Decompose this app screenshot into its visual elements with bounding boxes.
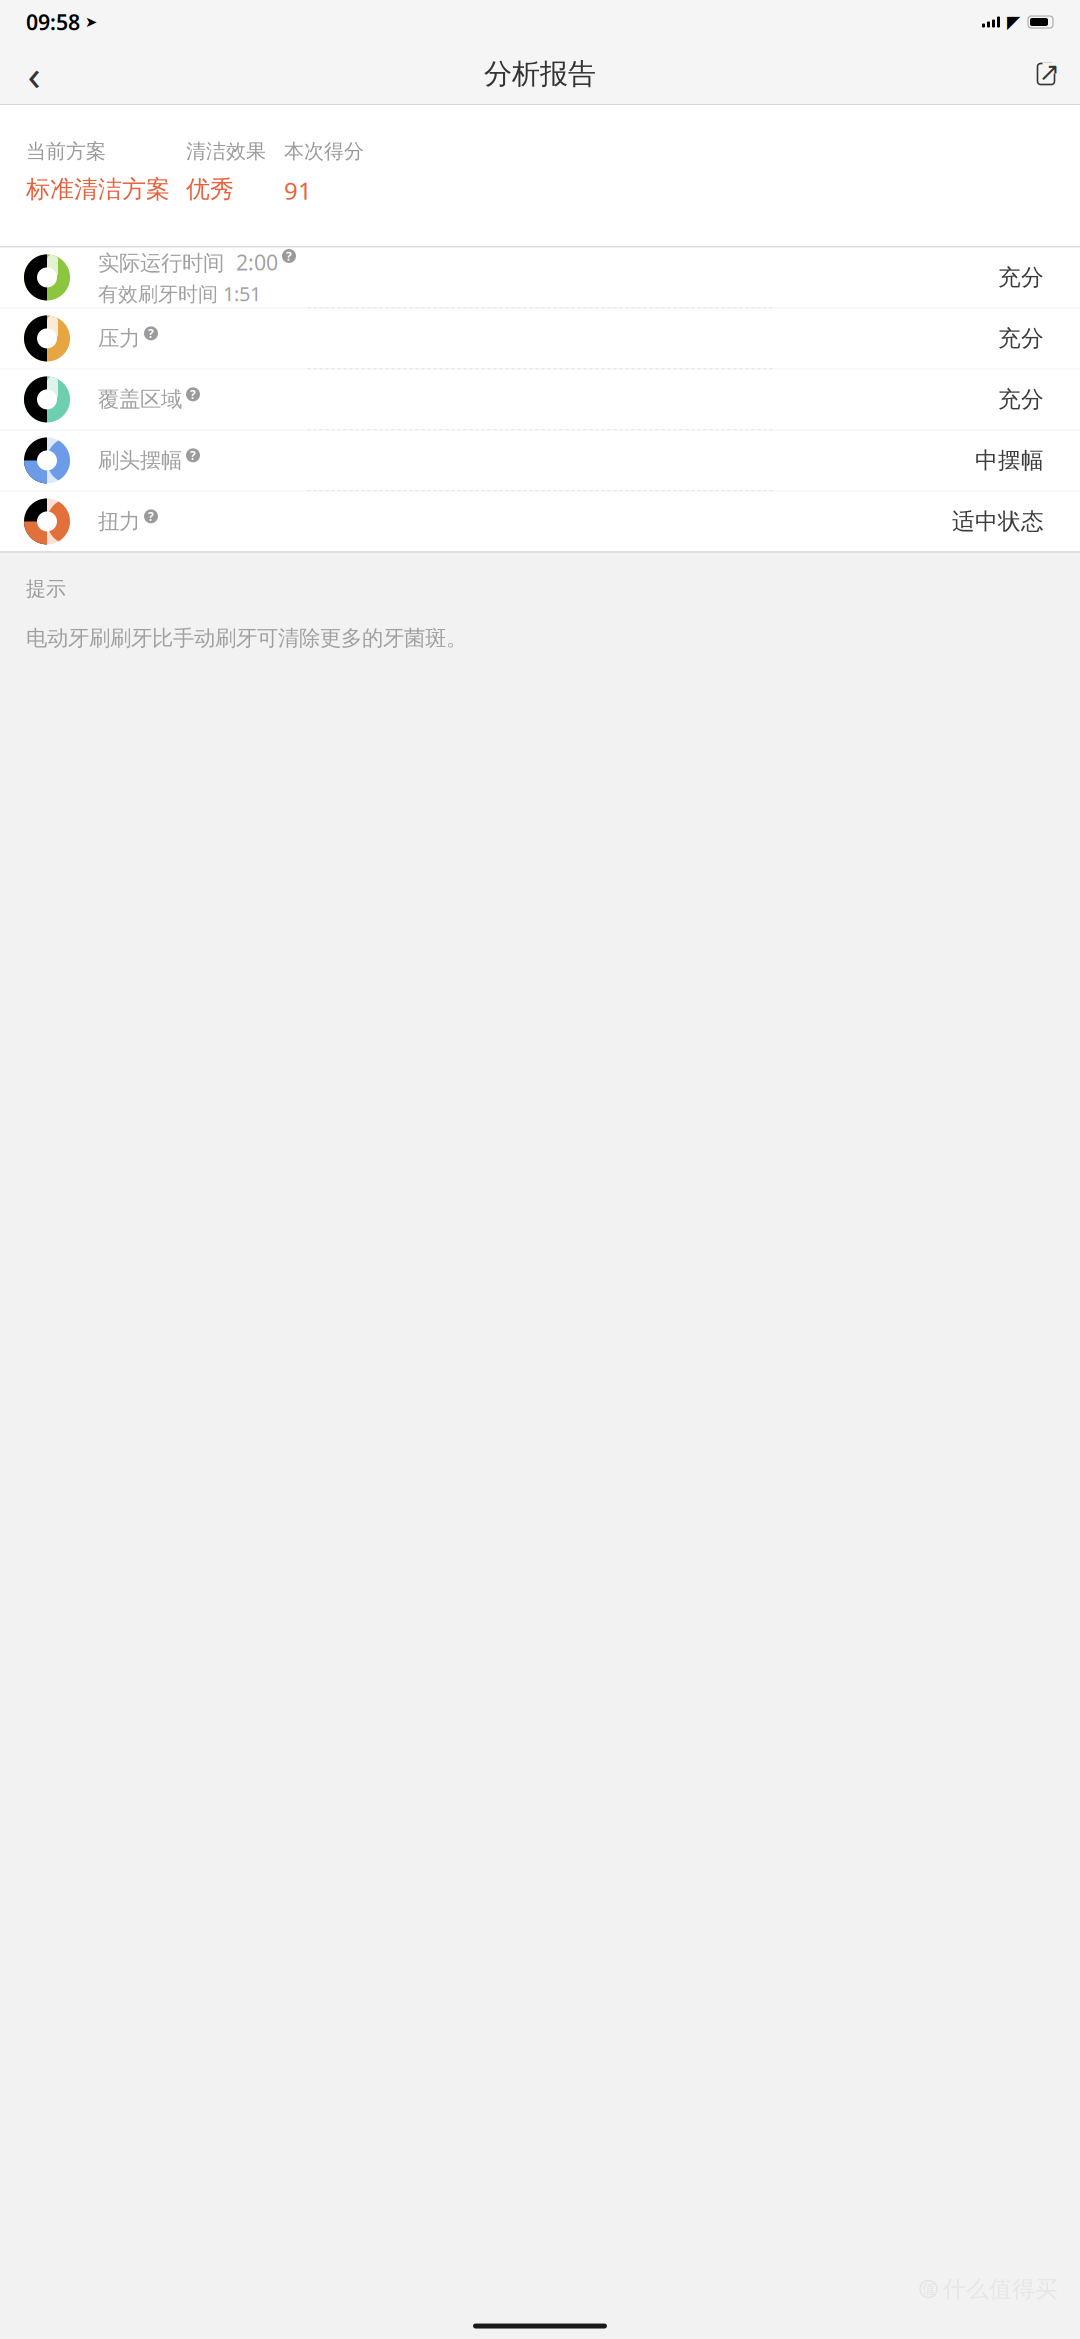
staticText: ? bbox=[190, 386, 196, 402]
staticText: 压力 bbox=[98, 325, 140, 351]
button[interactable]: Back bbox=[12, 52, 56, 96]
staticText: ? bbox=[190, 447, 196, 463]
staticText: ◤ bbox=[1007, 12, 1020, 32]
staticText: 扭力 bbox=[98, 508, 140, 534]
staticText: ‹ bbox=[27, 46, 40, 102]
staticText: 91 bbox=[284, 175, 312, 206]
staticText: 充分 bbox=[998, 385, 1044, 413]
button[interactable]: 扭力 bbox=[0, 491, 1080, 551]
button[interactable]: 实际运行时间 2:00 bbox=[0, 247, 1080, 307]
staticText: ? bbox=[148, 325, 154, 341]
staticText: 实际运行时间 2:00 bbox=[98, 248, 278, 276]
staticText: 标准清洁方案 bbox=[26, 175, 170, 204]
staticText: 适中状态 bbox=[952, 507, 1044, 535]
button[interactable]: 压力 bbox=[0, 308, 1080, 368]
button[interactable]: 覆盖区域 bbox=[0, 369, 1080, 429]
staticText: 充分 bbox=[998, 263, 1044, 291]
staticText: 覆盖区域 bbox=[98, 386, 182, 412]
staticText: 当前方案 bbox=[26, 139, 106, 164]
staticText: 优秀 bbox=[186, 175, 234, 204]
staticText: 值 bbox=[922, 2281, 935, 2297]
button[interactable]: 刷头摆幅 bbox=[0, 430, 1080, 490]
staticText: 有效刷牙时间 1:51 bbox=[98, 280, 261, 307]
staticText: 本次得分 bbox=[284, 139, 364, 164]
staticText: ➤ bbox=[85, 14, 97, 30]
staticText: 分析报告 bbox=[484, 57, 596, 91]
staticText: 中摆幅 bbox=[975, 446, 1044, 474]
staticText: 电动牙刷刷牙比手动刷牙可清除更多的牙菌斑。 bbox=[26, 625, 467, 651]
staticText: ↗ bbox=[1038, 58, 1059, 86]
staticText: 提示 bbox=[26, 576, 66, 601]
staticText: 刷头摆幅 bbox=[98, 447, 182, 473]
staticText: ? bbox=[286, 248, 292, 264]
staticText: ? bbox=[148, 508, 154, 524]
staticText: 清洁效果 bbox=[186, 139, 266, 164]
button[interactable]: Share bbox=[1024, 52, 1068, 96]
staticText: 充分 bbox=[998, 324, 1044, 352]
staticText: 什么值得买 bbox=[943, 2275, 1058, 2303]
staticText: 09:58 bbox=[26, 8, 80, 36]
